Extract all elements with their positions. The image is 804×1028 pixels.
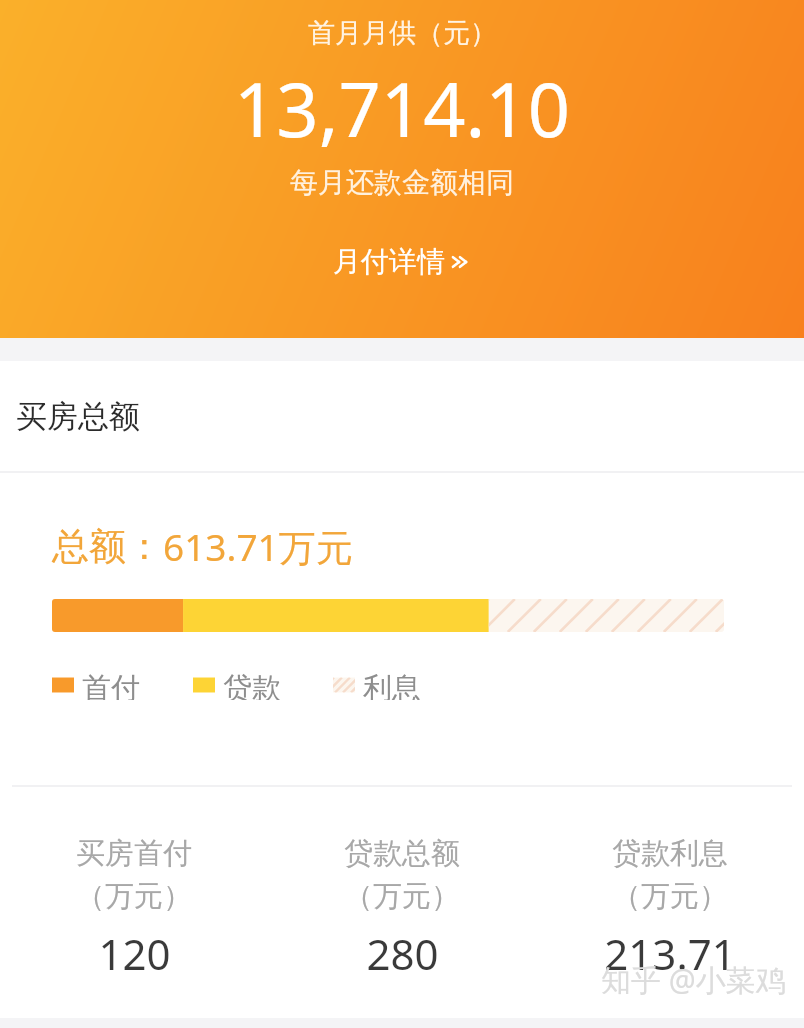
button[interactable]: 贷款利息 — [536, 835, 804, 982]
staticText: 120 — [98, 925, 171, 982]
staticText: （万元） — [612, 878, 728, 915]
staticText: 总额： — [52, 523, 163, 570]
staticText: 买房首付 — [76, 835, 192, 872]
staticText: 每月还款金额相同 — [290, 165, 514, 200]
button[interactable]: 贷款 — [193, 668, 281, 702]
staticText: 613.71万元 — [163, 521, 353, 572]
staticText: 买房总额 — [16, 397, 140, 436]
staticText: （万元） — [76, 878, 192, 915]
staticText: 13,714.10 — [234, 58, 570, 159]
staticText: 213.71 — [604, 925, 736, 982]
staticText: 贷款利息 — [612, 835, 728, 872]
button[interactable]: 贷款总额 — [268, 835, 536, 982]
button[interactable]: 首付 — [52, 668, 140, 702]
button[interactable]: 买房首付 — [0, 835, 268, 982]
staticText: 贷款总额 — [344, 835, 460, 872]
staticText: 280 — [366, 925, 439, 982]
staticText: 贷款 — [223, 670, 281, 700]
button[interactable]: 月付详情 — [319, 238, 485, 285]
button[interactable]: 利息 — [333, 668, 421, 702]
staticText: 首月月供（元） — [308, 16, 497, 50]
staticText: 利息 — [363, 670, 421, 700]
staticText: 月付详情 — [333, 244, 445, 279]
staticText: 首付 — [82, 670, 140, 700]
staticText: 知乎 @小菜鸡 — [601, 959, 786, 1000]
staticText: （万元） — [344, 878, 460, 915]
